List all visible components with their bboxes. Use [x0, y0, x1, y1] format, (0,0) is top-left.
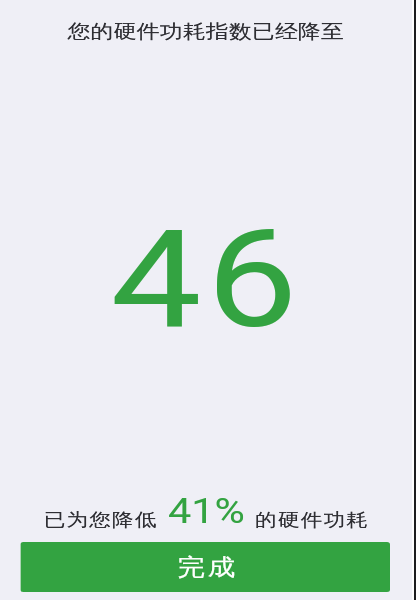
staticText: 完成 — [178, 553, 239, 582]
staticText: 已为您降低 41% 的硬件功耗 — [43, 491, 370, 532]
staticText: 您的硬件功耗指数已经降至 — [67, 20, 344, 44]
button[interactable]: 完成 — [20, 542, 390, 592]
staticText: 已为您降低 41% 的硬件功耗 — [43, 491, 370, 532]
staticText: 46 — [110, 201, 302, 359]
staticText: 您的硬件功耗指数已经降至 — [67, 20, 344, 44]
